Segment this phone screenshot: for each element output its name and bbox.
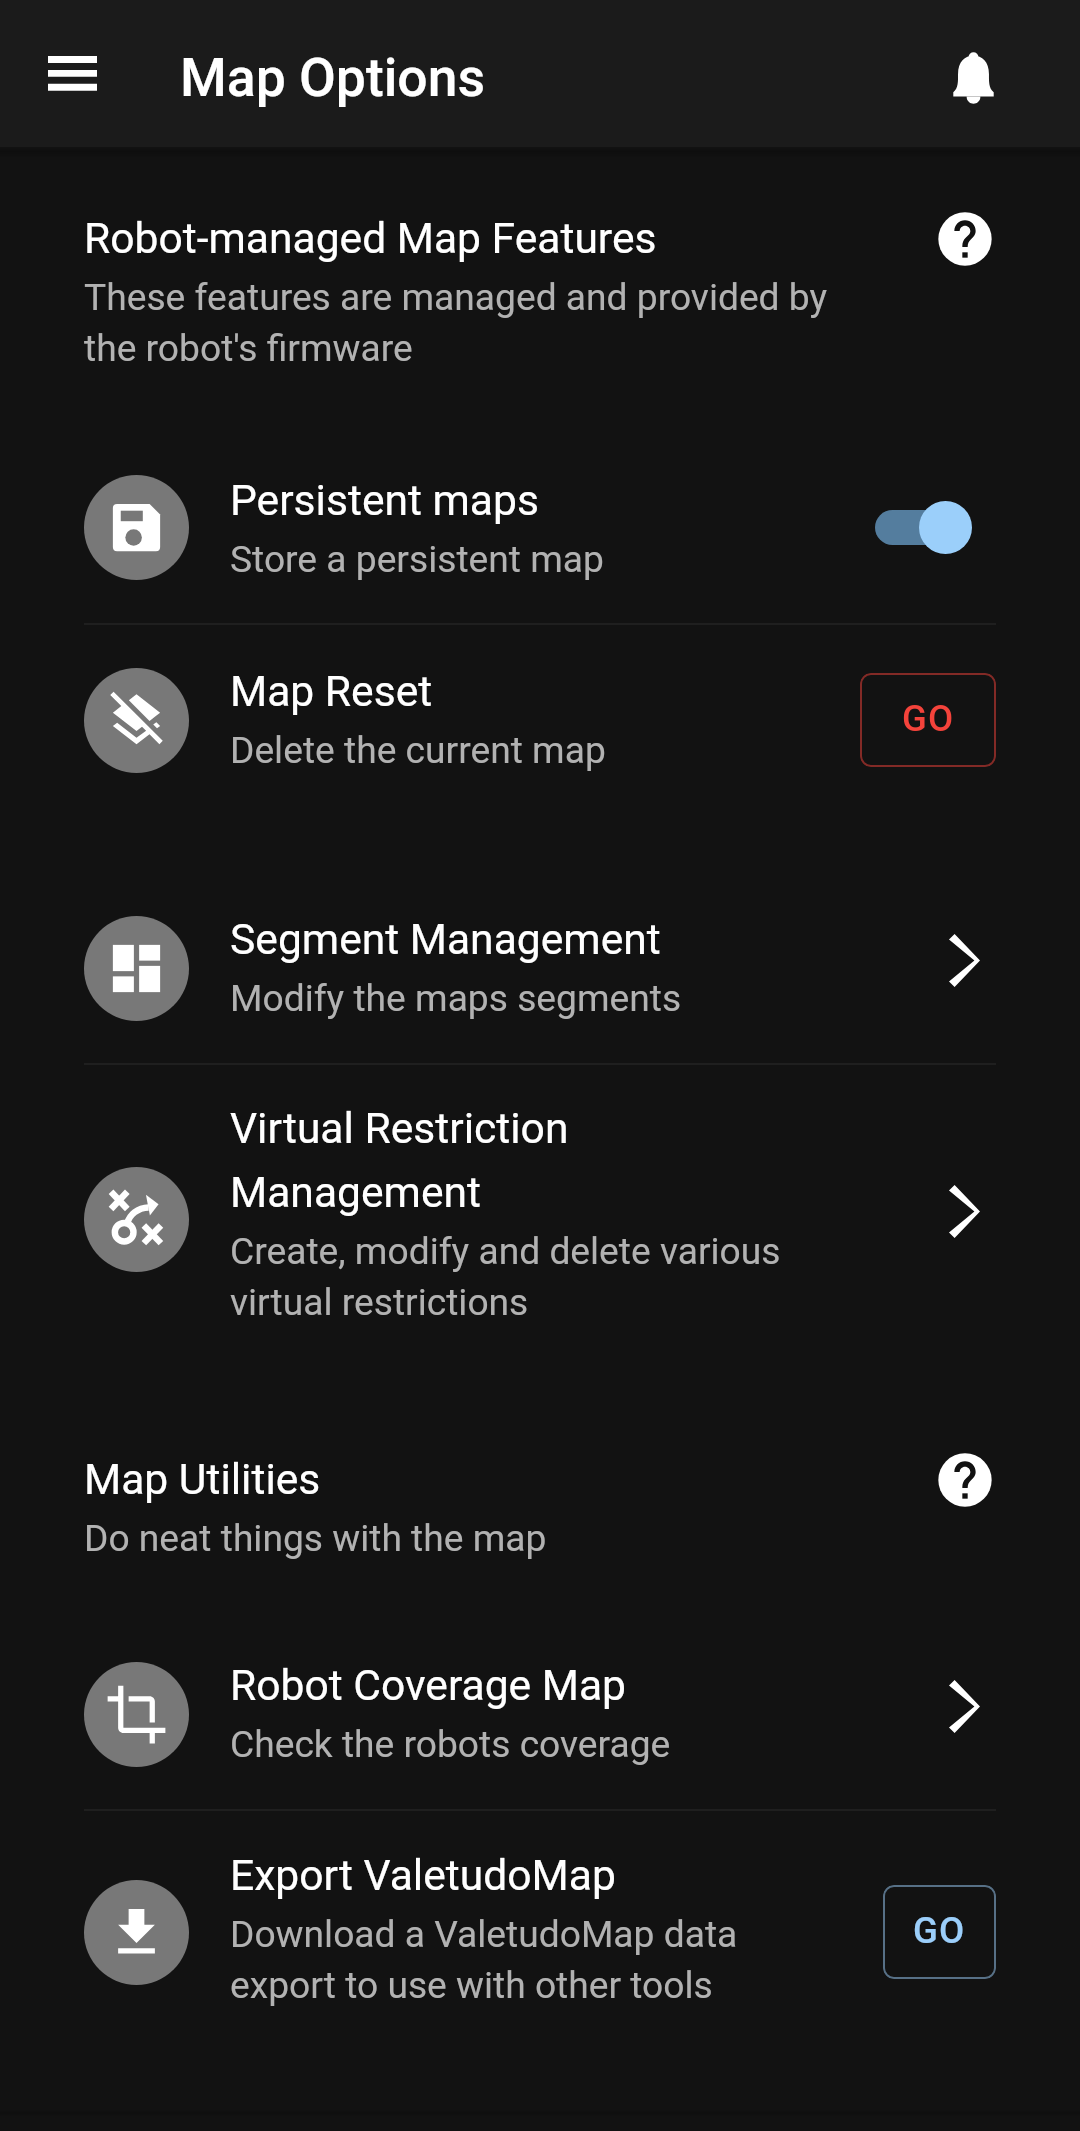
staticText: Download a ValetudoMap data export to us…: [230, 1907, 738, 2009]
staticText: Do neat things with the map: [84, 1511, 547, 1562]
button[interactable]: Help: [929, 203, 1001, 275]
staticText: GO: [913, 1909, 966, 1952]
staticText: Persistent maps: [230, 464, 539, 528]
staticText: Map Utilities: [84, 1443, 321, 1507]
staticText: Store a persistent map: [230, 532, 604, 583]
button[interactable]: Open navigation menu: [20, 21, 125, 126]
button[interactable]: Virtual Restriction Management: [0, 1065, 1080, 1373]
button[interactable]: Open: [933, 923, 996, 1013]
button[interactable]: Open: [933, 1669, 996, 1759]
staticText: Check the robots coverage: [230, 1717, 671, 1768]
staticText: Map Options: [180, 46, 486, 109]
button[interactable]: Notifications: [921, 21, 1026, 126]
staticText: Modify the maps segments: [230, 971, 682, 1022]
staticText: Robot Coverage Map: [230, 1649, 627, 1713]
staticText: Robot-managed Map Features: [84, 202, 657, 266]
button[interactable]: Open: [933, 1174, 996, 1264]
staticText: Segment Management: [230, 903, 661, 967]
button[interactable]: Persistent maps: [0, 431, 1080, 623]
button[interactable]: Export ValetudoMap: [0, 1811, 1080, 2053]
staticText: Map Reset: [230, 655, 433, 719]
staticText: GO: [902, 697, 955, 740]
staticText: Create, modify and delete various virtua…: [230, 1224, 781, 1326]
button[interactable]: Help: [929, 1444, 1001, 1516]
staticText: Virtual Restriction Management: [230, 1092, 569, 1220]
button[interactable]: Segment Management: [0, 873, 1080, 1063]
button[interactable]: GO: [883, 1885, 996, 1979]
button[interactable]: Robot Coverage Map: [0, 1619, 1080, 1809]
staticText: Export ValetudoMap: [230, 1839, 616, 1903]
button[interactable]: GO: [860, 673, 996, 767]
staticText: Delete the current map: [230, 723, 606, 774]
staticText: These features are managed and provided …: [84, 270, 828, 372]
button[interactable]: Persistent maps toggle: [875, 475, 996, 580]
button[interactable]: Map Reset: [0, 625, 1080, 815]
